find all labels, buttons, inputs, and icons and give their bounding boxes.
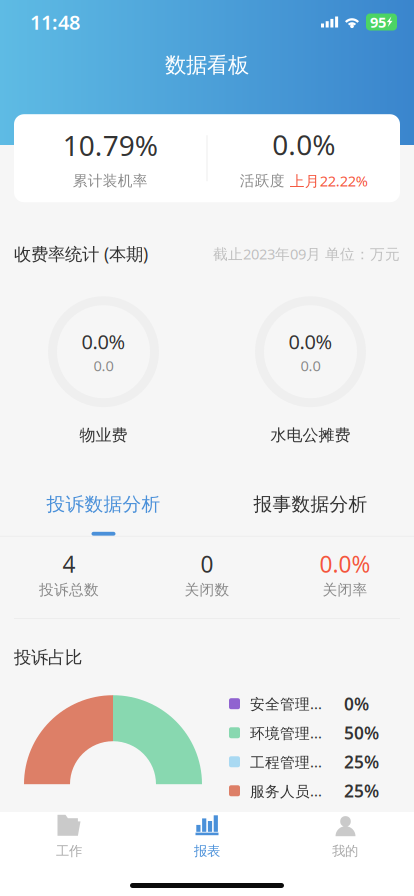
staticText: 0.0: [93, 356, 113, 375]
staticText: 服务人员类: [250, 781, 322, 801]
staticText: 11:48: [30, 9, 80, 35]
staticText: 物业费: [79, 425, 127, 445]
staticText: 截止2023年09月 单位：万元: [213, 244, 400, 263]
staticText: 投诉总数: [39, 581, 99, 599]
button[interactable]: 我的: [276, 813, 414, 859]
staticText: 50%: [344, 721, 379, 744]
staticText: 关闭率: [322, 581, 367, 599]
staticText: 工作: [56, 843, 82, 859]
staticText: 4: [62, 549, 75, 579]
staticText: 环境管理类: [250, 723, 322, 743]
staticText: 上月22.22%: [290, 171, 368, 191]
staticText: 累计装机率: [73, 172, 148, 190]
staticText: 投诉占比: [14, 647, 82, 668]
staticText: 安全管理类: [250, 694, 322, 713]
staticText: 0: [200, 549, 213, 579]
staticText: 收费率统计 (本期): [14, 242, 148, 265]
staticText: 25%: [344, 750, 379, 773]
staticText: 报表: [194, 843, 220, 859]
button[interactable]: 报事数据分析: [207, 493, 414, 536]
button[interactable]: 投诉数据分析: [0, 493, 207, 536]
staticText: 95: [370, 12, 386, 32]
staticText: 活跃度: [240, 172, 285, 190]
staticText: 工程管理类: [250, 752, 322, 772]
staticText: 我的: [332, 843, 358, 859]
staticText: 0%: [344, 692, 369, 715]
staticText: 25%: [344, 779, 379, 802]
staticText: 0.0%: [319, 549, 370, 579]
staticText: 报事数据分析: [253, 493, 367, 516]
staticText: 关闭数: [184, 581, 229, 599]
button[interactable]: 工作: [0, 813, 138, 859]
staticText: 数据看板: [165, 52, 249, 78]
staticText: 10.79%: [63, 127, 158, 164]
button[interactable]: 报表: [138, 813, 276, 859]
staticText: 水电公摊费: [270, 425, 350, 445]
staticText: 0.0%: [272, 126, 335, 163]
staticText: 0.0%: [81, 328, 125, 355]
staticText: 0.0%: [288, 328, 332, 355]
staticText: 0.0: [300, 356, 320, 375]
staticText: 投诉数据分析: [46, 493, 160, 516]
